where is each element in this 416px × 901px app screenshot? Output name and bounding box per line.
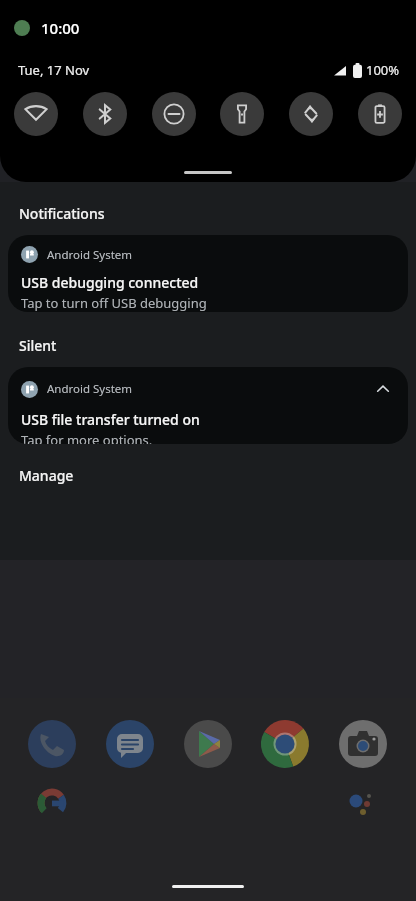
button[interactable]: Auto-rotate [289,92,333,136]
button[interactable]: Bluetooth [83,92,127,136]
staticText: 100% [366,61,400,79]
staticText: Tap for more options. [21,431,153,444]
staticText: Android System [47,381,133,397]
staticText: Manage [19,466,74,485]
other: Privacy indicator [14,20,30,36]
staticText: Notifications [19,204,105,223]
button[interactable]: Android System [8,367,408,444]
staticText: Silent [19,336,57,355]
button[interactable]: Wi-Fi [14,92,58,136]
button[interactable]: Silent [19,336,416,355]
button[interactable]: Android System [8,235,408,312]
button[interactable]: Flashlight [220,92,264,136]
staticText: USB debugging connected [21,273,199,292]
button[interactable]: Do Not Disturb [152,92,196,136]
button[interactable] [184,171,232,174]
button[interactable]: Collapse [372,378,394,400]
button[interactable]: Notifications [19,204,416,223]
button[interactable]: Manage [19,466,416,485]
staticText: Tue, 17 Nov [18,61,90,79]
button[interactable]: Battery Saver [358,92,402,136]
staticText: Android System [47,247,133,263]
staticText: USB file transfer turned on [21,410,200,429]
staticText: Tap to turn off USB debugging [21,294,207,312]
staticText: 10:00 [41,18,80,38]
